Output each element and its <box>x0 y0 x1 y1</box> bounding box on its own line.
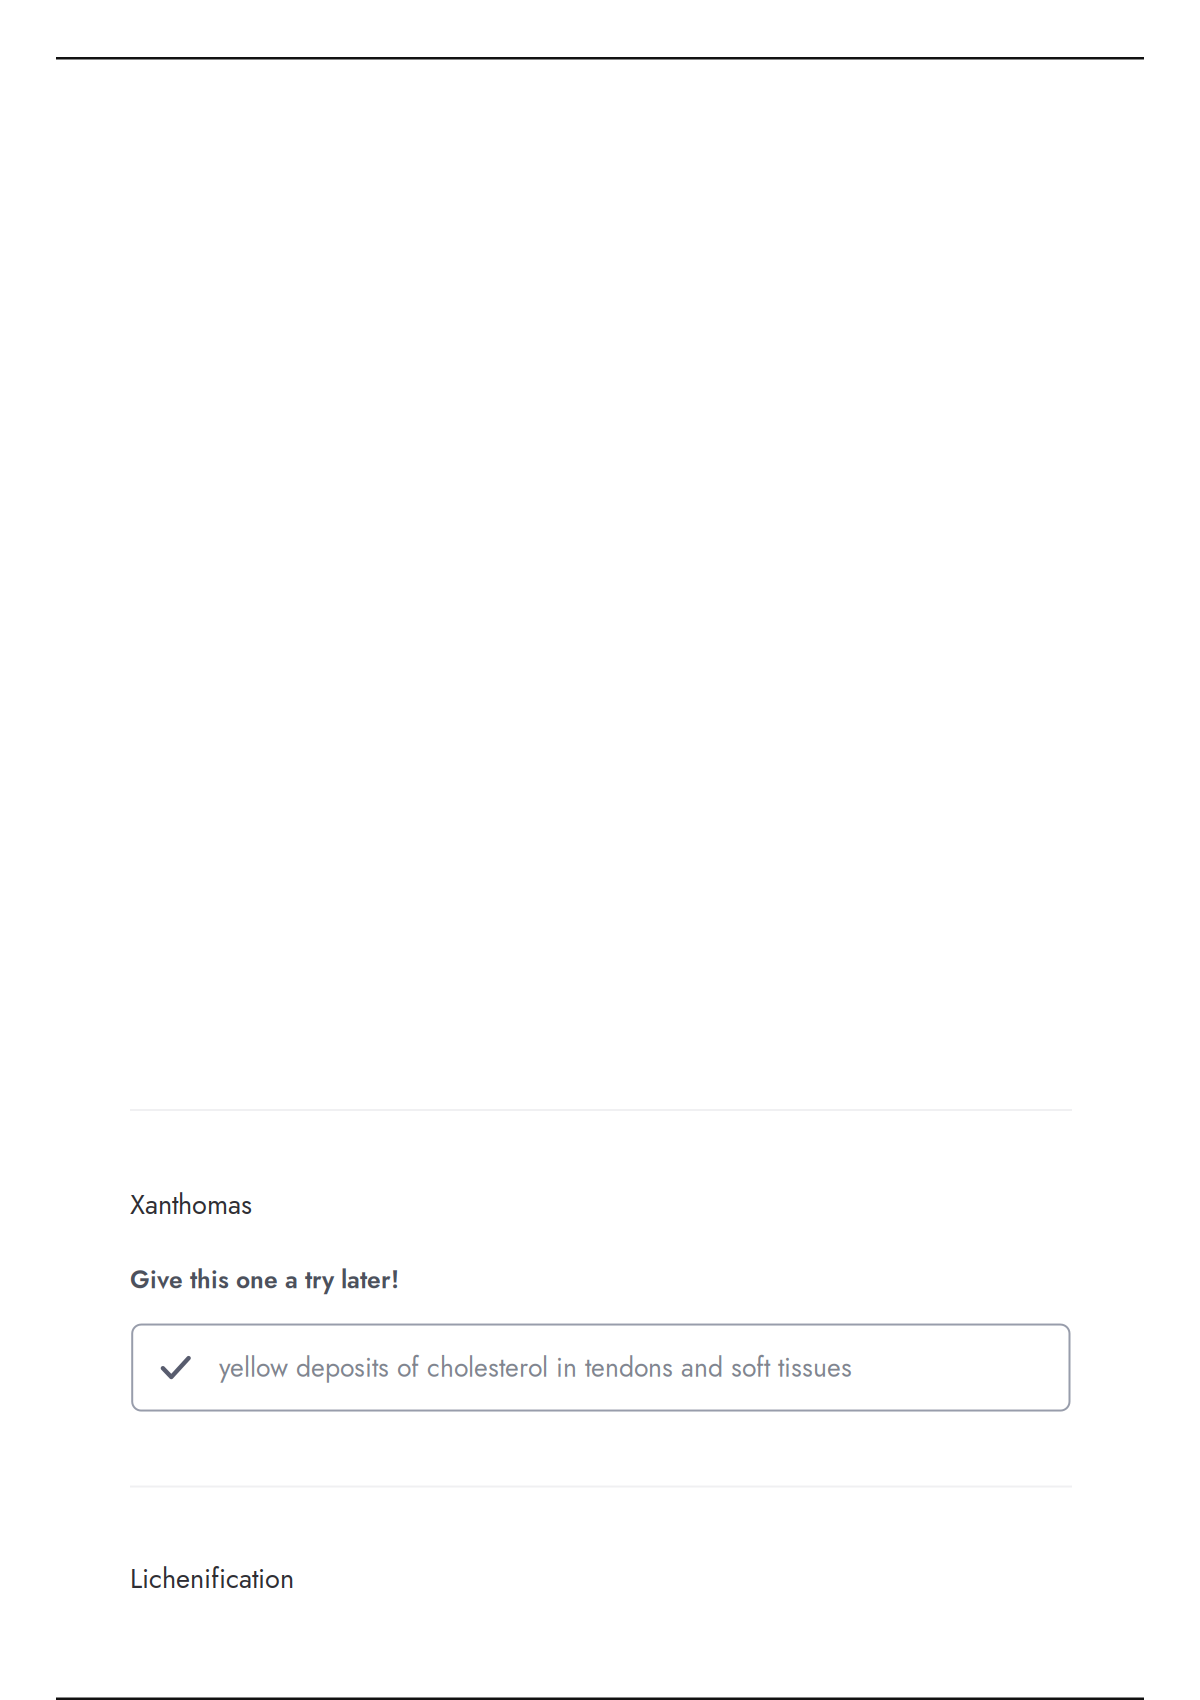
staticText: Lichenification <box>130 1559 294 1598</box>
staticText: Xanthomas <box>130 1185 252 1224</box>
staticText: Give this one a try later! <box>130 1262 399 1298</box>
button[interactable]: yellow deposits of cholesterol in tendon… <box>130 1324 1070 1412</box>
staticText: yellow deposits of cholesterol in tendon… <box>219 1348 852 1387</box>
